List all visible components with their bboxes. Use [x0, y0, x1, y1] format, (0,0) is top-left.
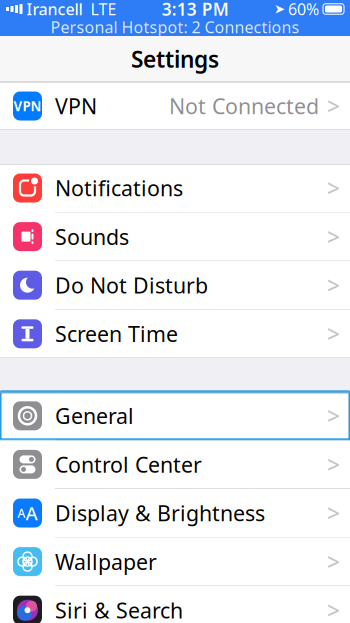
staticText: Sounds	[55, 222, 129, 251]
button[interactable]: Screen Time	[0, 310, 350, 358]
staticText: VPN	[55, 92, 97, 120]
button[interactable]: Wallpaper	[0, 538, 350, 586]
staticText: VPN	[13, 97, 41, 115]
staticText: A	[17, 505, 25, 521]
button[interactable]: Control Center	[0, 440, 350, 488]
button[interactable]: Do Not Disturb	[0, 261, 350, 309]
staticText: A	[25, 501, 37, 525]
button[interactable]: Siri & Search	[0, 586, 350, 623]
staticText: >	[327, 546, 340, 577]
staticText: >	[327, 319, 340, 349]
staticText: Do Not Disturb	[55, 271, 208, 299]
staticText: >	[327, 401, 340, 431]
staticText: ➤	[274, 1, 285, 16]
staticText: Settings	[131, 44, 219, 74]
staticText: >	[327, 173, 340, 203]
staticText: 3:13 PM	[162, 0, 229, 20]
staticText: >	[327, 449, 340, 479]
staticText: Personal Hotspot: 2 Connections	[50, 16, 299, 38]
staticText: >	[327, 91, 340, 121]
staticText: Irancell	[26, 0, 82, 20]
staticText: Control Center	[55, 450, 202, 478]
staticText: Notifications	[55, 174, 183, 202]
staticText: Screen Time	[55, 320, 178, 348]
staticText: >	[327, 498, 340, 528]
staticText: 60%	[288, 0, 319, 20]
button[interactable]: General	[0, 392, 350, 440]
button[interactable]: VPN	[0, 82, 350, 130]
staticText: >	[327, 595, 340, 623]
staticText: Wallpaper	[55, 547, 157, 576]
staticText: >	[327, 270, 340, 300]
staticText: General	[55, 402, 134, 430]
staticText: Display & Brightness	[55, 499, 265, 527]
staticText: Siri & Search	[55, 596, 183, 623]
button[interactable]: Notifications	[0, 164, 350, 212]
button[interactable]: A	[0, 489, 350, 537]
staticText: >	[327, 221, 340, 252]
button[interactable]: Sounds	[0, 213, 350, 261]
staticText: LTE	[90, 0, 116, 20]
staticText: Not Connected	[169, 92, 319, 120]
